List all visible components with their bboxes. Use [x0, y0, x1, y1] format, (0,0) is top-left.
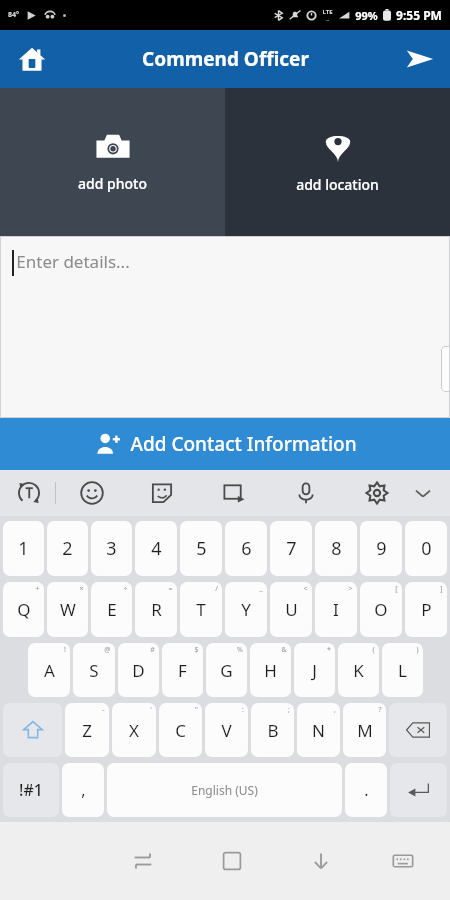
staticText: C: [175, 719, 186, 742]
button[interactable]: U: [270, 582, 312, 637]
staticText: S: [89, 659, 99, 682]
button[interactable]: Send: [396, 35, 444, 83]
button[interactable]: 3: [91, 521, 132, 576]
staticText: ..: [326, 16, 329, 23]
button[interactable]: Emoji: [75, 476, 109, 510]
button[interactable]: Shift: [3, 703, 62, 757]
staticText: ?: [378, 705, 382, 715]
button[interactable]: W: [47, 582, 88, 637]
staticText: ": [195, 705, 198, 715]
button[interactable]: Home: [8, 35, 56, 83]
button[interactable]: .: [345, 763, 387, 817]
staticText: K: [353, 659, 364, 682]
staticText: ,: [334, 705, 336, 715]
button[interactable]: R: [135, 582, 177, 637]
button[interactable]: Hide keyboard: [276, 822, 365, 900]
button[interactable]: H: [250, 643, 291, 697]
button[interactable]: K: [338, 643, 379, 697]
button[interactable]: E: [91, 582, 132, 637]
staticText: Add Contact Information: [130, 431, 357, 457]
staticText: N: [312, 719, 325, 742]
staticText: ,: [81, 779, 86, 801]
staticText: B: [267, 719, 279, 742]
button[interactable]: Translate: [12, 476, 46, 510]
button[interactable]: Keyboard: [365, 822, 440, 900]
staticText: $: [194, 645, 199, 655]
button[interactable]: !#1: [3, 763, 59, 817]
staticText: 7: [286, 536, 297, 561]
button[interactable]: N: [297, 703, 340, 757]
button[interactable]: L: [382, 643, 423, 697]
staticText: ': [150, 705, 152, 715]
button[interactable]: S: [73, 643, 115, 697]
button[interactable]: Home: [187, 822, 276, 900]
button[interactable]: Backspace: [389, 703, 447, 757]
button[interactable]: add location: [225, 88, 450, 236]
button[interactable]: C: [159, 703, 202, 757]
staticText: 99%: [355, 8, 378, 23]
staticText: Commend Officer: [142, 46, 309, 72]
button[interactable]: M: [343, 703, 386, 757]
staticText: 1: [18, 536, 29, 561]
button[interactable]: 2: [47, 521, 88, 576]
button[interactable]: Enter: [390, 763, 447, 817]
button[interactable]: Q: [3, 582, 44, 637]
button[interactable]: D: [118, 643, 159, 697]
staticText: 5: [196, 536, 207, 561]
button[interactable]: Voice input: [289, 476, 323, 510]
staticText: L: [398, 659, 407, 682]
button[interactable]: GIF: [217, 476, 251, 510]
staticText: 3: [106, 536, 117, 561]
button[interactable]: Add Contact Information: [0, 418, 450, 470]
button[interactable]: 4: [135, 521, 177, 576]
staticText: T: [196, 598, 206, 621]
staticText: -: [102, 705, 105, 715]
staticText: <: [303, 584, 308, 594]
button[interactable]: A: [28, 643, 70, 697]
button[interactable]: Enter details...: [0, 236, 450, 418]
staticText: &: [281, 645, 287, 655]
button[interactable]: F: [162, 643, 203, 697]
button[interactable]: Collapse keyboard: [406, 476, 440, 510]
button[interactable]: 5: [180, 521, 222, 576]
button[interactable]: Recents: [98, 822, 187, 900]
button[interactable]: 7: [270, 521, 312, 576]
button[interactable]: ,: [62, 763, 104, 817]
staticText: U: [285, 598, 298, 621]
button[interactable]: X: [112, 703, 156, 757]
staticText: add photo: [78, 174, 147, 193]
button[interactable]: O: [360, 582, 402, 637]
staticText: 0: [421, 536, 432, 561]
button[interactable]: T: [180, 582, 222, 637]
button[interactable]: Y: [225, 582, 267, 637]
staticText: X: [129, 719, 139, 742]
button[interactable]: 6: [225, 521, 267, 576]
staticText: 8: [331, 536, 342, 561]
staticText: !#1: [19, 779, 43, 801]
button[interactable]: Stickers: [145, 476, 179, 510]
button[interactable]: B: [251, 703, 294, 757]
staticText: %: [237, 645, 243, 655]
button[interactable]: 0: [405, 521, 447, 576]
button[interactable]: Settings: [360, 476, 394, 510]
button[interactable]: G: [206, 643, 247, 697]
button[interactable]: P: [405, 582, 447, 637]
staticText: English (US): [191, 782, 258, 798]
button[interactable]: J: [294, 643, 335, 697]
staticText: V: [221, 719, 232, 742]
staticText: P: [421, 598, 432, 621]
staticText: LTE: [322, 8, 333, 16]
staticText: @: [104, 645, 111, 655]
button[interactable]: I: [315, 582, 357, 637]
button[interactable]: 9: [360, 521, 402, 576]
button[interactable]: 8: [315, 521, 357, 576]
staticText: ): [416, 645, 419, 655]
staticText: G: [220, 659, 233, 682]
button[interactable]: add photo: [0, 88, 225, 236]
button[interactable]: English (US): [107, 763, 342, 817]
staticText: 84°: [8, 10, 19, 20]
button[interactable]: Z: [65, 703, 109, 757]
button[interactable]: V: [205, 703, 248, 757]
button[interactable]: 1: [3, 521, 44, 576]
staticText: /: [215, 584, 218, 594]
